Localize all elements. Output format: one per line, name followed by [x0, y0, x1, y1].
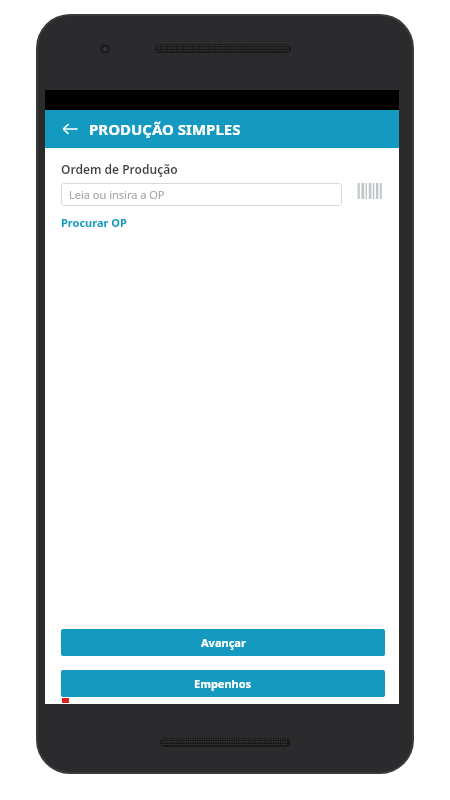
button[interactable]: Back	[55, 114, 85, 144]
button[interactable]: Avançar	[61, 629, 385, 656]
button[interactable]: Empenhos	[61, 670, 385, 697]
staticText: Empenhos	[194, 676, 252, 691]
button[interactable]: Procurar OP	[61, 215, 127, 230]
staticText: Ordem de Produção	[61, 161, 178, 177]
staticText: PRODUÇÃO SIMPLES	[89, 119, 241, 139]
button[interactable]: Leia ou insira a OP	[61, 183, 342, 206]
staticText: Avançar	[201, 635, 246, 650]
staticText: Procurar OP	[61, 215, 127, 230]
button[interactable]: Scan barcode	[352, 177, 386, 205]
staticText: Leia ou insira a OP	[69, 187, 165, 202]
